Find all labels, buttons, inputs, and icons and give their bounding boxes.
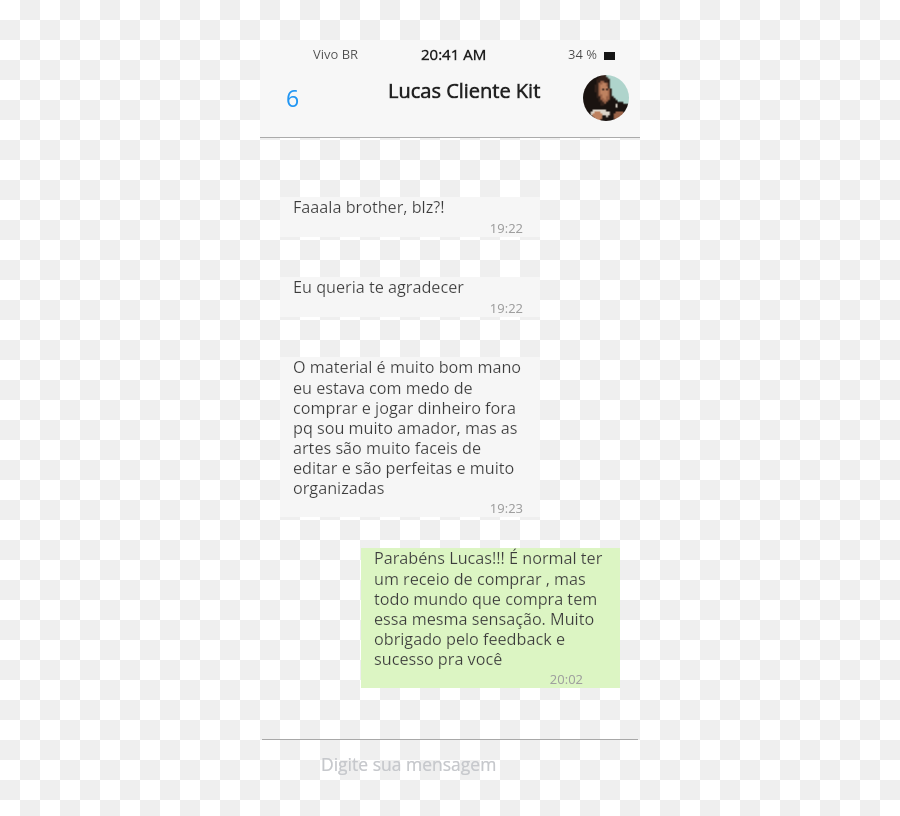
staticText: 34 % <box>568 45 597 63</box>
button[interactable]: Faaala brother, blz?! <box>280 197 540 237</box>
staticText: 6 <box>286 82 300 113</box>
button[interactable]: Parabéns Lucas!!! É normal ter um receio… <box>361 548 620 688</box>
staticText: Digite sua mensagem <box>321 752 497 776</box>
staticText: Vivo BR <box>313 45 359 63</box>
staticText: Faaala brother, blz?! <box>293 196 445 218</box>
button[interactable]: O material é muito bom mano eu estava co… <box>280 357 540 517</box>
staticText: 20:02 <box>361 670 583 688</box>
button[interactable]: Digite sua mensagem <box>262 742 638 798</box>
staticText: 20:41 AM <box>421 44 487 64</box>
button[interactable]: Back <box>276 80 310 114</box>
staticText: 19:22 <box>280 299 523 317</box>
button[interactable]: Contact photo <box>583 75 629 121</box>
staticText: O material é muito bom mano eu estava co… <box>293 356 525 498</box>
button[interactable]: Eu queria te agradecer <box>280 277 540 317</box>
staticText: Lucas Cliente Kit <box>388 77 541 104</box>
staticText: 19:22 <box>280 219 523 237</box>
staticText: Parabéns Lucas!!! É normal ter um receio… <box>374 547 605 669</box>
staticText: Eu queria te agradecer <box>293 276 464 298</box>
staticText: 19:23 <box>280 499 523 517</box>
